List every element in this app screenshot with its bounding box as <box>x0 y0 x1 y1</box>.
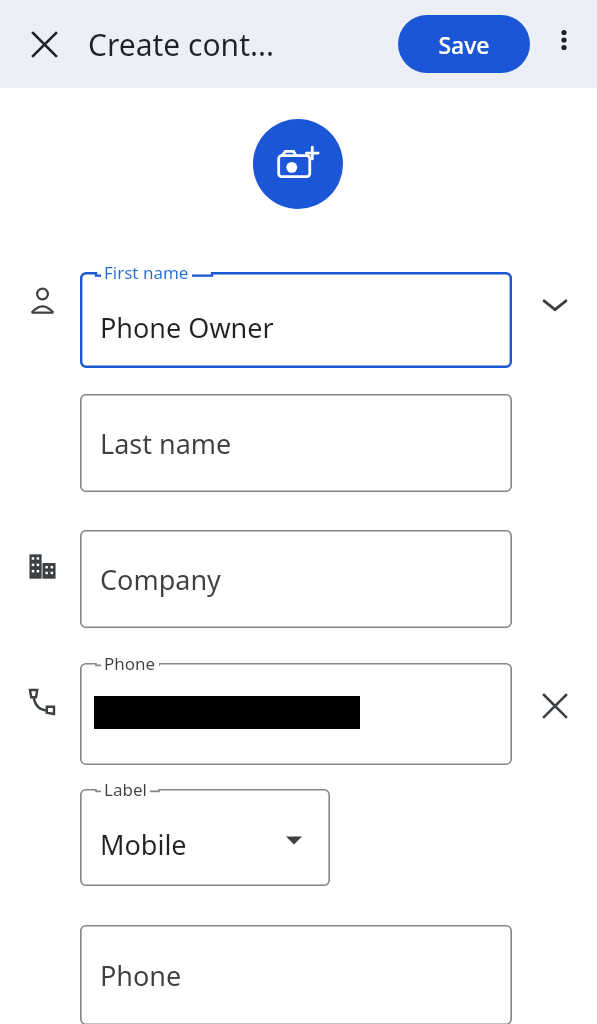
button[interactable]: Expand name fields <box>528 278 582 332</box>
staticText: First name <box>104 261 189 284</box>
staticText: Save <box>438 29 490 60</box>
staticText: Company <box>100 561 221 598</box>
button[interactable]: Clear phone <box>528 679 582 733</box>
button[interactable]: Phone <box>80 925 512 1024</box>
staticText: Last name <box>100 425 232 462</box>
button[interactable]: First name <box>80 272 512 368</box>
staticText: Mobile <box>100 826 187 863</box>
staticText: Create cont... <box>88 24 275 65</box>
button[interactable]: Company <box>80 530 512 628</box>
button[interactable]: More options <box>538 14 590 66</box>
button[interactable]: Add photo <box>253 119 343 209</box>
button[interactable]: Phone <box>80 663 512 765</box>
button[interactable]: Close <box>14 14 74 74</box>
button[interactable]: Select label <box>276 822 312 858</box>
staticText: Phone <box>100 957 182 994</box>
button[interactable]: Last name <box>80 394 512 492</box>
button[interactable]: Save <box>398 15 530 73</box>
button[interactable]: Label <box>80 789 330 886</box>
staticText: Label <box>104 778 147 801</box>
staticText: Phone <box>104 652 156 675</box>
staticText: Phone Owner <box>100 309 274 346</box>
